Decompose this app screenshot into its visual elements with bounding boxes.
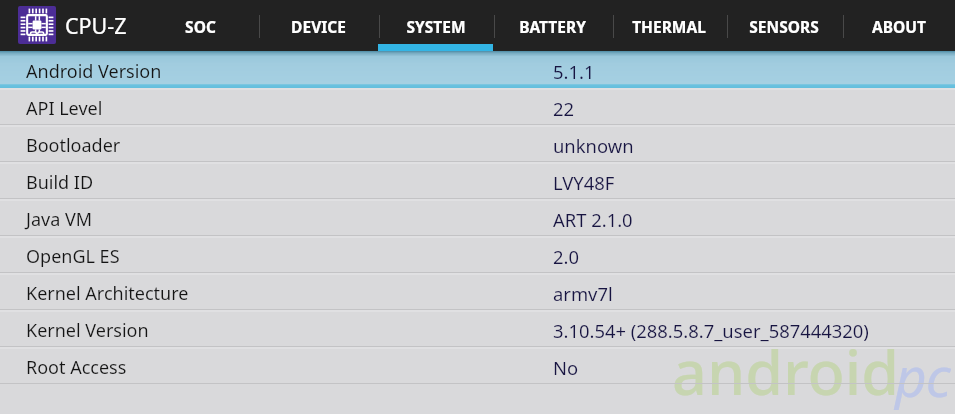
button[interactable]: Bootloader xyxy=(0,125,955,162)
button[interactable]: SYSTEM xyxy=(378,0,493,51)
staticText: unknown xyxy=(553,133,634,158)
button[interactable]: CPU-Z, open navigation xyxy=(0,0,127,51)
button[interactable]: SENSORS xyxy=(726,0,842,51)
staticText: 2.0 xyxy=(553,244,579,269)
button[interactable]: Kernel Architecture xyxy=(0,273,955,310)
button[interactable]: THERMAL xyxy=(612,0,726,51)
button[interactable]: BATTERY xyxy=(493,0,612,51)
staticText: android xyxy=(672,330,900,413)
staticText: Bootloader xyxy=(26,133,553,158)
staticText: DEVICE xyxy=(291,16,346,37)
staticText: ABOUT xyxy=(872,16,926,37)
staticText: THERMAL xyxy=(632,16,706,37)
staticText: Java VM xyxy=(26,207,553,232)
staticText: SOC xyxy=(185,16,216,37)
button[interactable]: API Level xyxy=(0,88,955,125)
staticText: Android Version xyxy=(26,59,553,84)
staticText: 22 xyxy=(553,96,575,121)
staticText: OpenGL ES xyxy=(26,244,553,269)
staticText: SYSTEM xyxy=(406,16,466,37)
staticText: 3.10.54+ (288.5.8.7_user_587444320) xyxy=(553,318,869,343)
staticText: armv7l xyxy=(553,281,613,306)
button[interactable]: Java VM xyxy=(0,199,955,236)
staticText: Build ID xyxy=(26,170,553,195)
staticText: Root Access xyxy=(26,355,553,380)
button[interactable]: OpenGL ES xyxy=(0,236,955,273)
button[interactable]: Android Version xyxy=(0,51,955,88)
staticText: ART 2.1.0 xyxy=(553,207,633,232)
staticText: Kernel Architecture xyxy=(26,281,553,306)
button[interactable]: Root Access xyxy=(0,347,955,384)
staticText: No xyxy=(553,355,579,380)
staticText: CPU-Z xyxy=(65,11,127,40)
button[interactable]: Build ID xyxy=(0,162,955,199)
staticText: 5.1.1 xyxy=(553,59,595,84)
staticText: LVY48F xyxy=(553,170,615,195)
button[interactable]: ABOUT xyxy=(842,0,955,51)
button[interactable]: Kernel Version xyxy=(0,310,955,347)
staticText: BATTERY xyxy=(519,16,586,37)
staticText: API Level xyxy=(26,96,553,121)
button[interactable]: DEVICE xyxy=(258,0,378,51)
button[interactable]: SOC xyxy=(143,0,258,51)
staticText: pc xyxy=(895,338,950,413)
staticText: Kernel Version xyxy=(26,318,553,343)
staticText: SENSORS xyxy=(749,16,819,37)
